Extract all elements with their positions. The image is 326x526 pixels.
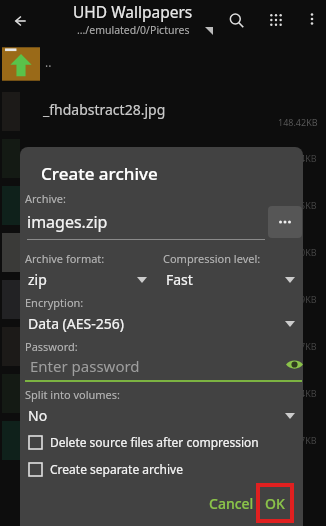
staticText: 0KB	[300, 246, 317, 258]
staticText: UHD Wallpapers	[73, 1, 193, 22]
staticText: 9KB	[300, 293, 317, 305]
staticText: 5KB	[300, 199, 317, 211]
staticText: Fast	[166, 270, 193, 289]
staticText: 7KB	[300, 434, 317, 446]
button[interactable]	[0, 182, 326, 229]
staticText: Compression level:	[163, 251, 261, 266]
staticText: 148.42KB	[278, 116, 318, 128]
staticText: Archive:	[25, 191, 67, 206]
button[interactable]: Create separate archive	[29, 457, 183, 481]
button[interactable]: Enter password	[25, 353, 302, 381]
staticText: ..	[45, 54, 52, 70]
button[interactable]: Delete source files after compression	[29, 430, 259, 454]
staticText: images.zip	[27, 211, 108, 233]
button[interactable]: Search	[222, 6, 250, 34]
staticText: Data (AES-256)	[28, 314, 124, 333]
button[interactable]: Fast	[163, 266, 302, 292]
button[interactable]	[0, 323, 326, 370]
button[interactable]: Data (AES-256)	[25, 310, 302, 336]
staticText: …/emulated/0/Pictures	[77, 23, 190, 37]
button[interactable]: Browse	[268, 206, 302, 238]
staticText: Create separate archive	[50, 461, 183, 477]
staticText: 4KB	[300, 387, 317, 399]
button[interactable]	[0, 276, 326, 323]
button[interactable]: Back	[6, 8, 32, 34]
button[interactable]	[0, 370, 326, 417]
staticText: Cancel	[209, 494, 254, 513]
button[interactable]: No	[25, 402, 302, 428]
button[interactable]	[0, 229, 326, 276]
button[interactable]: OK	[258, 485, 292, 521]
button[interactable]: Grid view	[262, 6, 290, 34]
staticText: 4KB	[300, 152, 317, 164]
button[interactable]: More options	[299, 6, 325, 32]
staticText: _fhdabstract28.jpg	[43, 100, 166, 119]
button[interactable]: zip	[25, 266, 155, 292]
button[interactable]: Show password	[282, 352, 303, 376]
button[interactable]	[0, 135, 326, 182]
button[interactable]: _fhdabstract28.jpg	[0, 88, 326, 135]
staticText: Password:	[25, 339, 78, 354]
staticText: zip	[28, 270, 47, 289]
staticText: Enter password	[30, 356, 140, 376]
staticText: No	[28, 406, 48, 425]
staticText: Delete source files after compression	[50, 434, 259, 450]
staticText: 7KB	[300, 340, 317, 352]
staticText: Archive format:	[25, 251, 105, 266]
staticText: Split into volumes:	[25, 387, 121, 402]
staticText: OK	[265, 494, 285, 513]
button[interactable]: Cancel	[200, 487, 262, 519]
staticText: Encryption:	[25, 295, 84, 310]
staticText: Create archive	[41, 162, 158, 185]
button[interactable]	[0, 417, 326, 464]
button[interactable]: ..	[0, 40, 326, 88]
